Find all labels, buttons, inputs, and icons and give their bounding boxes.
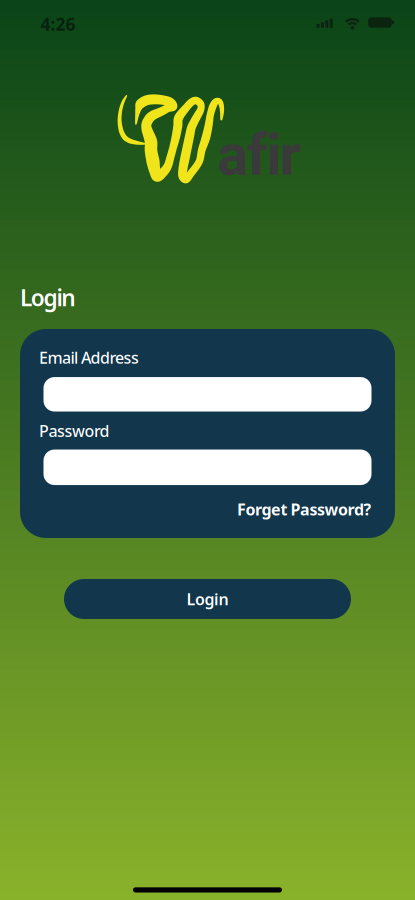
staticText: 4:26: [40, 12, 75, 35]
staticText: Login: [186, 588, 228, 610]
staticText: af‌ir: [217, 121, 301, 189]
staticText: Login: [20, 282, 75, 312]
button[interactable]: Login: [64, 579, 351, 619]
staticText: Password: [39, 420, 109, 441]
staticText: Email Address: [39, 347, 139, 368]
button[interactable]: [43, 377, 371, 412]
button[interactable]: Forget Password?: [237, 499, 371, 520]
staticText: Forget Password?: [237, 499, 371, 520]
button[interactable]: [43, 450, 371, 485]
